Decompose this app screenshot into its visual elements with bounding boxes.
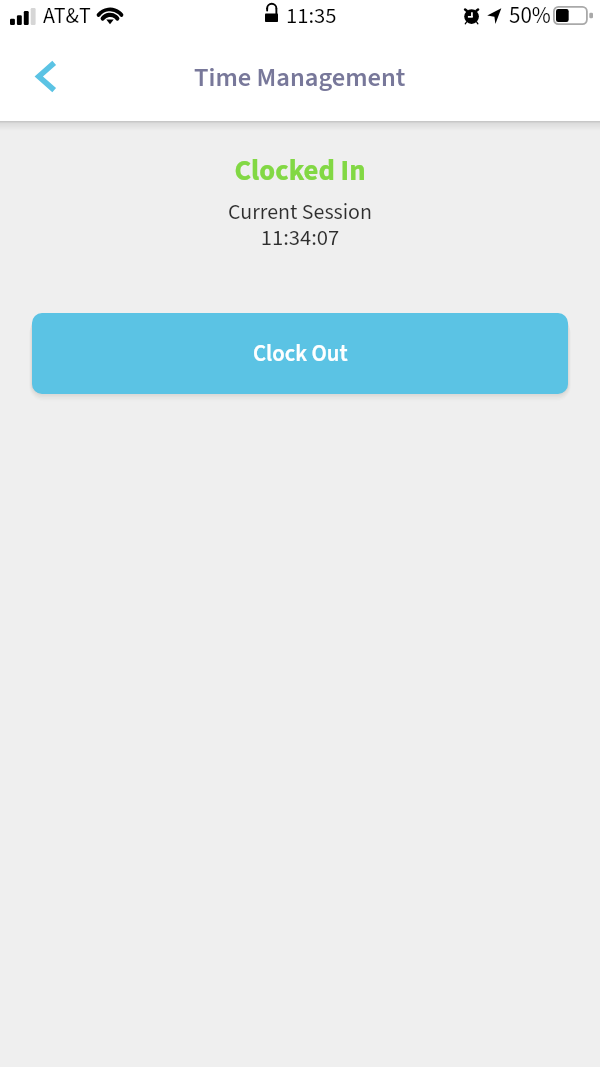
staticText: 11:34:07 [0, 222, 600, 254]
staticText: Current Session [0, 197, 600, 228]
button[interactable]: Clock Out [32, 313, 568, 394]
staticText: 11:35 [286, 0, 337, 32]
staticText: Time Management [194, 59, 406, 97]
button[interactable]: Back [24, 54, 68, 98]
staticText: Clocked In [0, 151, 600, 192]
staticText: Clock Out [253, 338, 348, 370]
staticText: 50% [509, 0, 551, 32]
staticText: AT&T [43, 0, 91, 31]
